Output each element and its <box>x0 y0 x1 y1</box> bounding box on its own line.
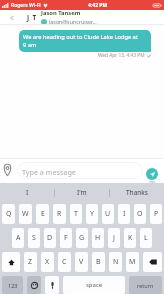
staticText: P <box>154 209 159 219</box>
staticText: U <box>105 209 111 219</box>
button[interactable]: N <box>109 252 122 272</box>
staticText: I'm <box>77 188 87 197</box>
staticText: Z <box>28 257 33 267</box>
button[interactable]: J <box>108 228 120 248</box>
button[interactable]: F <box>60 228 72 248</box>
button[interactable]: P <box>150 204 162 224</box>
button[interactable]: Type a message <box>17 162 143 179</box>
button[interactable]: I'm <box>55 183 109 202</box>
button[interactable]: A <box>12 228 24 248</box>
button[interactable]: W <box>19 204 32 224</box>
button[interactable]: space <box>63 276 125 294</box>
button[interactable]: Shift <box>2 252 20 272</box>
staticText: Q <box>6 209 12 219</box>
button[interactable]: Send <box>146 168 158 180</box>
staticText: E <box>41 209 45 219</box>
staticText: Thanks <box>126 188 148 197</box>
button[interactable]: J T <box>23 10 37 25</box>
staticText: F <box>64 233 68 243</box>
button[interactable]: Location <box>2 163 13 176</box>
staticText: K <box>128 233 133 243</box>
button[interactable]: C <box>58 252 71 272</box>
staticText: W <box>22 209 29 219</box>
staticText: D <box>47 233 53 243</box>
staticText: Rogers Wi-Fi <box>11 2 41 9</box>
staticText: return <box>137 282 154 289</box>
button[interactable]: V <box>75 252 88 272</box>
staticText: Wed Apr 13, 4:43 PM <box>98 52 145 59</box>
button[interactable]: Y <box>86 204 98 224</box>
button[interactable]: H <box>92 228 104 248</box>
staticText: 235 <box>148 180 156 186</box>
staticText: H <box>95 233 101 243</box>
staticText: 123 <box>8 282 18 289</box>
staticText: Jason Tansem <box>41 9 81 17</box>
button[interactable]: Emoji <box>27 276 41 294</box>
staticText: space <box>86 281 103 289</box>
staticText: J <box>113 233 115 243</box>
button[interactable]: G <box>76 228 88 248</box>
staticText: We are heading out to Clude Lake Lodge a… <box>23 33 138 49</box>
button[interactable]: M <box>126 252 139 272</box>
staticText: O <box>137 209 143 219</box>
staticText: 4:42 PM <box>88 2 108 9</box>
button[interactable]: Back <box>0 10 23 25</box>
staticText: T <box>74 209 78 219</box>
button[interactable]: Z <box>24 252 37 272</box>
button[interactable]: Backspace <box>143 252 162 272</box>
staticText: A <box>16 233 21 243</box>
staticText: I <box>123 209 126 219</box>
staticText: I <box>26 188 29 197</box>
button[interactable]: return <box>129 276 162 294</box>
button[interactable]: Thanks <box>110 183 164 202</box>
staticText: L <box>144 233 148 243</box>
staticText: Y <box>90 209 94 219</box>
button[interactable]: O <box>134 204 146 224</box>
button[interactable]: 123 <box>2 276 23 294</box>
button[interactable]: I <box>0 183 54 202</box>
button[interactable]: L <box>140 228 152 248</box>
button[interactable]: B <box>92 252 105 272</box>
button[interactable]: U <box>102 204 114 224</box>
button[interactable]: Voice input <box>45 276 59 294</box>
button[interactable]: E <box>36 204 49 224</box>
staticText: M <box>129 257 136 267</box>
staticText: R <box>57 209 62 219</box>
button[interactable]: T <box>70 204 82 224</box>
button[interactable]: Q <box>2 204 15 224</box>
staticText: X <box>45 257 50 267</box>
button[interactable]: S <box>28 228 40 248</box>
staticText: B <box>96 257 101 267</box>
staticText: jason@suncruiser... <box>49 18 97 25</box>
staticText: S <box>32 233 36 243</box>
button[interactable]: K <box>124 228 136 248</box>
staticText: G <box>79 233 85 243</box>
staticText: J T <box>27 13 38 22</box>
button[interactable]: X <box>41 252 54 272</box>
button[interactable]: D <box>44 228 56 248</box>
staticText: N <box>113 257 119 267</box>
button[interactable]: R <box>53 204 66 224</box>
staticText: V <box>79 257 84 267</box>
staticText: Type a message <box>22 167 76 177</box>
staticText: C <box>62 257 67 267</box>
button[interactable]: I <box>118 204 130 224</box>
